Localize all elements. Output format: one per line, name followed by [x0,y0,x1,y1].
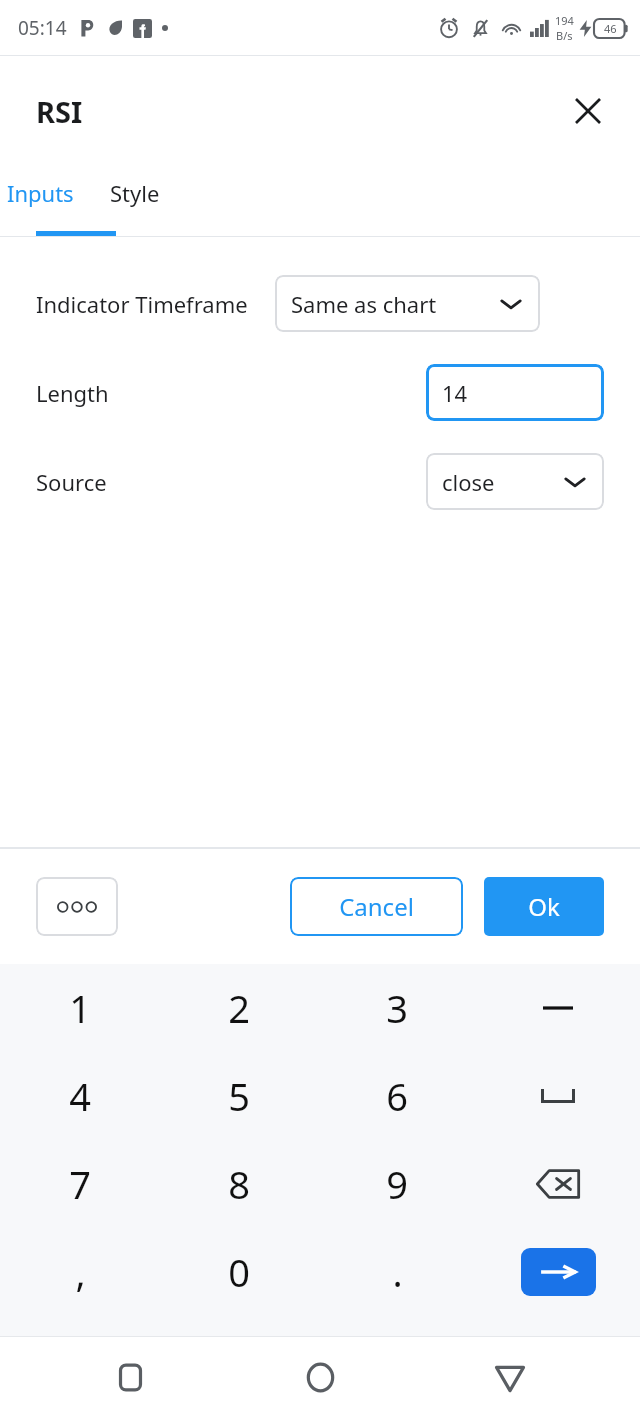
button[interactable]: 5 [160,1052,318,1140]
button[interactable]: 14 [426,364,604,421]
staticText: 2 [228,982,250,1034]
staticText: 9 [386,1158,408,1210]
button[interactable]: Same as chart [275,275,540,332]
button[interactable]: Enter [476,1228,640,1316]
staticText: 1 [69,982,91,1034]
button[interactable]: Style [80,166,190,236]
button[interactable]: 6 [318,1052,476,1140]
button[interactable]: Ok [484,877,604,936]
button[interactable]: . [318,1228,476,1316]
staticText: 05:14 [18,15,67,41]
staticText: Ok [528,890,560,923]
button[interactable]: 8 [160,1140,318,1228]
staticText: Indicator Timeframe [36,289,248,319]
button[interactable]: Space [476,1052,640,1140]
staticText: 0 [228,1246,250,1298]
staticText: 7 [69,1158,91,1210]
button[interactable]: Close [560,83,616,139]
button[interactable]: Minus [476,964,640,1052]
button[interactable]: 3 [318,964,476,1052]
staticText: 5 [228,1070,250,1122]
staticText: Source [36,467,107,497]
staticText: close [442,467,495,497]
staticText: 14 [442,378,468,408]
staticText: 6 [386,1070,408,1122]
button[interactable]: 1 [0,964,160,1052]
button[interactable]: , [0,1228,160,1316]
staticText: RSI [36,92,83,131]
staticText: . [392,1246,403,1298]
staticText: Same as chart [291,289,437,319]
staticText: Style [110,178,160,208]
button[interactable]: Home [260,1337,380,1418]
button[interactable]: 9 [318,1140,476,1228]
button[interactable]: 2 [160,964,318,1052]
button[interactable]: Inputs [0,166,80,236]
staticText: 194 [555,13,574,28]
button[interactable]: 0 [160,1228,318,1316]
button[interactable]: Recent apps [70,1337,190,1418]
staticText: 8 [228,1158,250,1210]
button[interactable]: close [426,453,604,510]
staticText: 46 [604,21,617,36]
staticText: Inputs [7,178,74,208]
staticText: Length [36,378,109,408]
staticText: B/s [556,28,573,43]
button[interactable]: Back [450,1337,570,1418]
staticText: Cancel [339,890,414,923]
button[interactable]: Backspace [476,1140,640,1228]
button[interactable]: More options [36,877,118,936]
staticText: 3 [386,982,408,1034]
button[interactable]: Cancel [290,877,463,936]
staticText: , [75,1246,86,1298]
button[interactable]: 7 [0,1140,160,1228]
staticText: 4 [69,1070,91,1122]
button[interactable]: 4 [0,1052,160,1140]
